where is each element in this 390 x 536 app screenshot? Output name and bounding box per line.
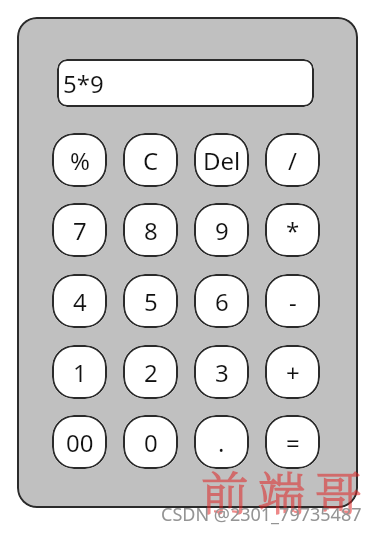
staticText: 9 [215, 214, 229, 247]
staticText: + [286, 356, 300, 389]
button[interactable]: 5 [123, 274, 178, 328]
button[interactable]: . [194, 415, 249, 469]
staticText: = [286, 426, 300, 459]
button[interactable]: = [265, 415, 320, 469]
button[interactable]: % [52, 133, 107, 187]
staticText: 4 [73, 285, 87, 318]
button[interactable]: C [123, 133, 178, 187]
staticText: 6 [215, 285, 229, 318]
button[interactable]: 2 [123, 345, 178, 399]
staticText: 0 [144, 426, 158, 459]
button[interactable]: - [265, 274, 320, 328]
button[interactable]: 4 [52, 274, 107, 328]
staticText: * [286, 214, 300, 247]
staticText: 00 [66, 426, 94, 459]
button[interactable]: 3 [194, 345, 249, 399]
staticText: % [70, 144, 90, 177]
staticText: - [289, 285, 297, 318]
button[interactable]: 6 [194, 274, 249, 328]
staticText: 2 [144, 356, 158, 389]
button[interactable]: 7 [52, 203, 107, 257]
button[interactable]: / [265, 133, 320, 187]
staticText: 8 [144, 214, 158, 247]
button[interactable]: Del [194, 133, 249, 187]
staticText: C [143, 144, 159, 177]
staticText: 3 [215, 356, 229, 389]
button[interactable]: + [265, 345, 320, 399]
button[interactable]: * [265, 203, 320, 257]
button[interactable]: 9 [194, 203, 249, 257]
button[interactable]: 00 [52, 415, 107, 469]
staticText: . [218, 426, 225, 459]
staticText: 1 [73, 356, 87, 389]
button[interactable]: 0 [123, 415, 178, 469]
staticText: 5*9 [63, 67, 104, 100]
staticText: Del [203, 144, 241, 177]
staticText: / [288, 144, 297, 177]
staticText: 5 [144, 285, 158, 318]
staticText: CSDN @2301_79735487 [161, 502, 362, 527]
button[interactable]: 8 [123, 203, 178, 257]
staticText: 前端哥 [201, 457, 372, 525]
staticText: 7 [73, 214, 87, 247]
button[interactable]: 1 [52, 345, 107, 399]
